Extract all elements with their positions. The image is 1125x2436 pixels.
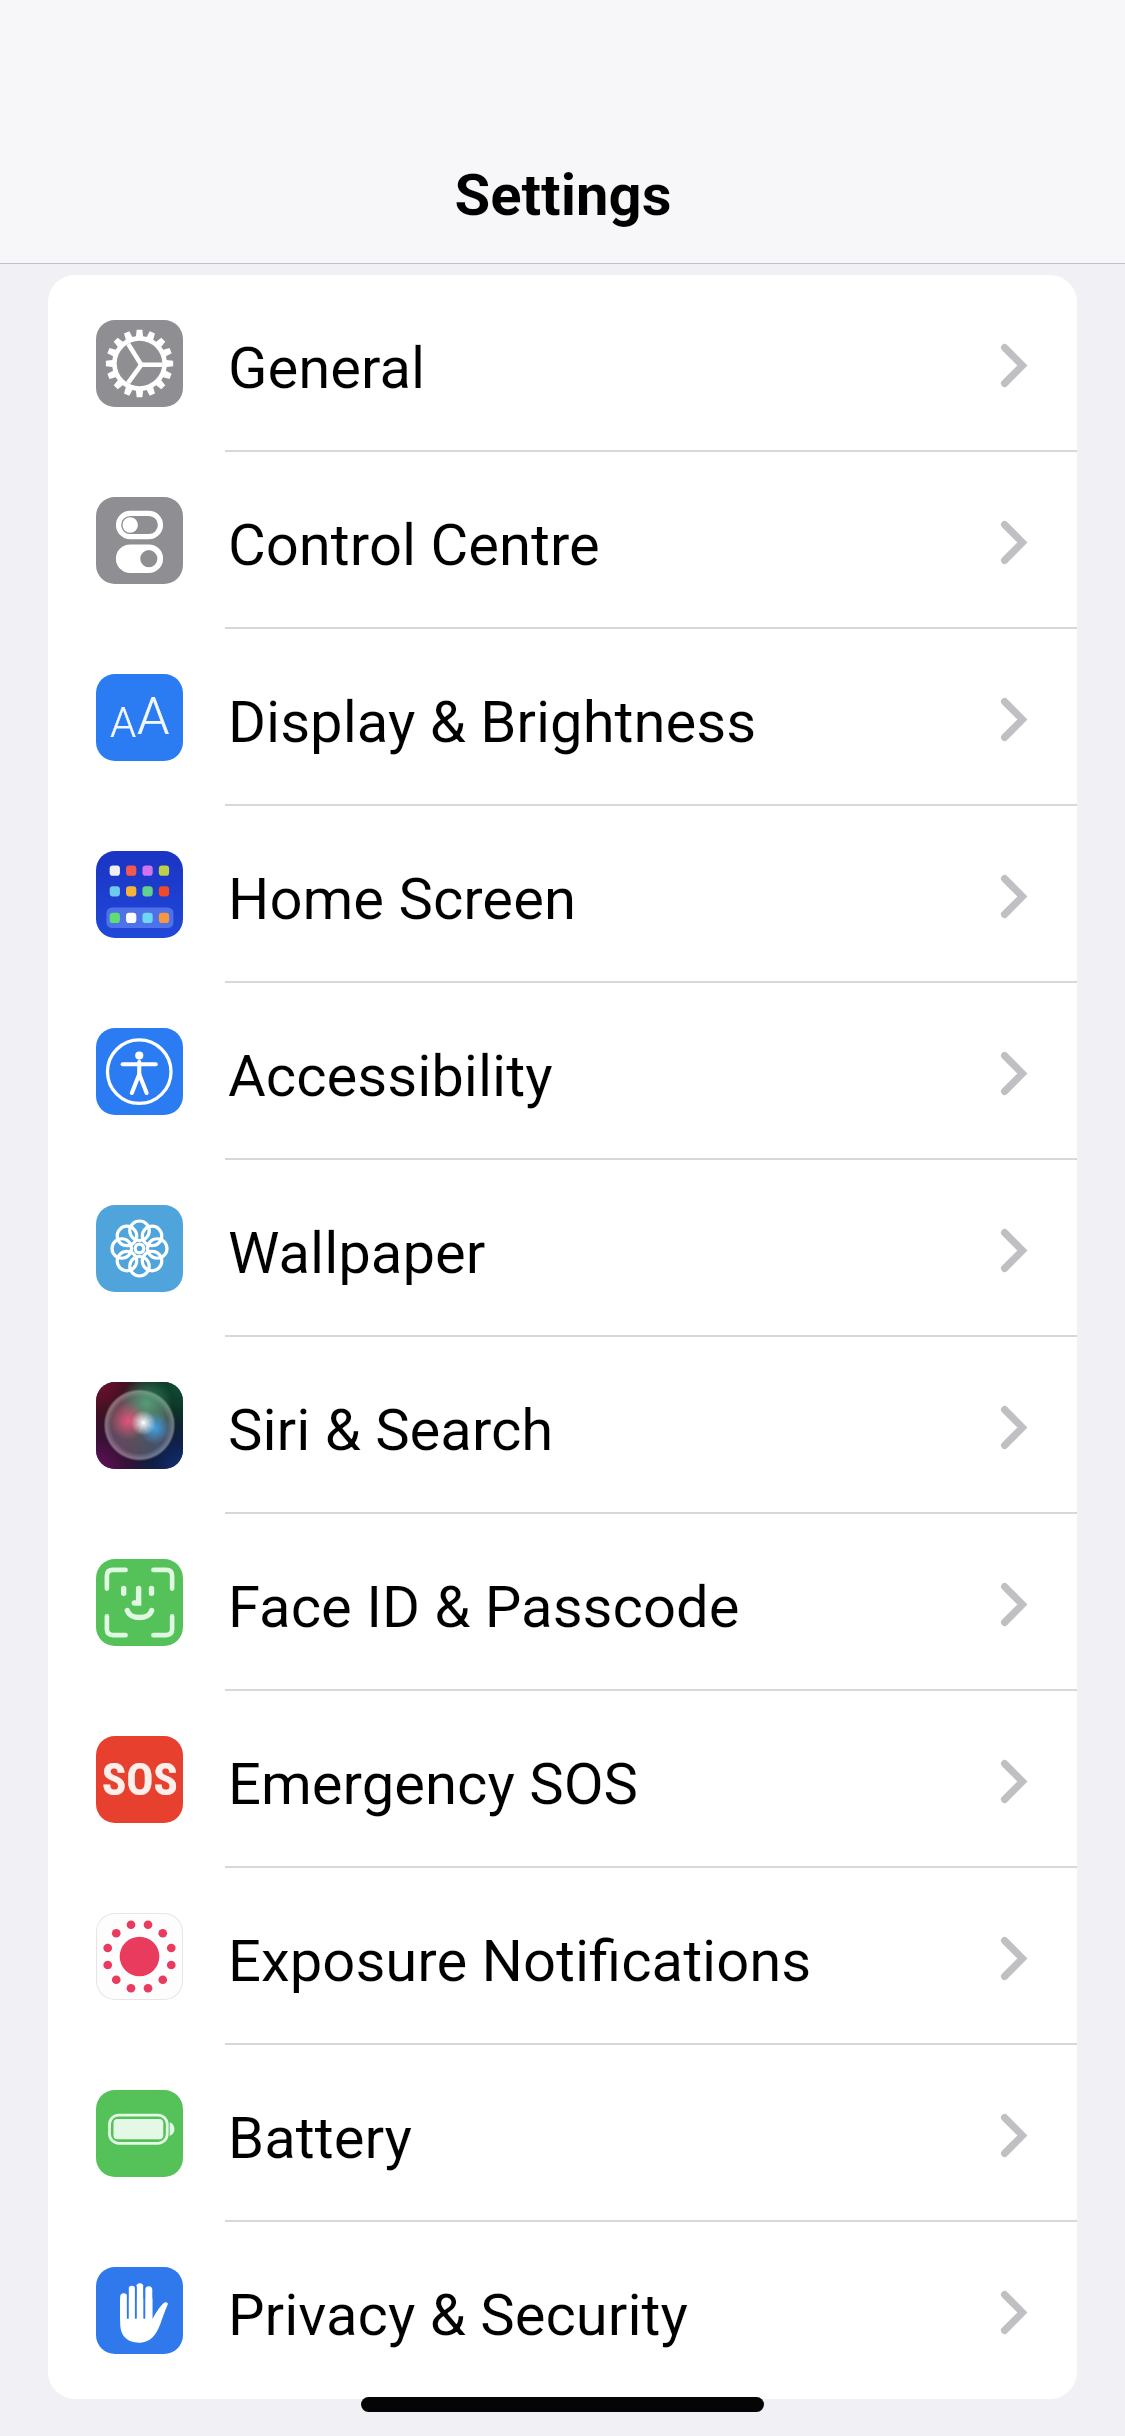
staticText: General [228, 334, 426, 402]
button[interactable]: Siri & Search [48, 1337, 1077, 1514]
staticText: Control Centre [228, 511, 600, 579]
staticText: Home Screen [228, 865, 576, 933]
button[interactable]: General [48, 275, 1077, 452]
button[interactable]: Battery [48, 2045, 1077, 2222]
button[interactable]: Home Screen [48, 806, 1077, 983]
button[interactable]: Control Centre [48, 452, 1077, 629]
staticText: SOS [102, 1753, 178, 1806]
staticText: Accessibility [228, 1042, 553, 1110]
button[interactable]: Privacy & Security [48, 2222, 1077, 2399]
staticText: Settings [454, 161, 672, 229]
button[interactable]: Exposure Notifications [48, 1868, 1077, 2045]
button[interactable]: Accessibility [48, 983, 1077, 1160]
staticText: Emergency SOS [228, 1750, 639, 1818]
staticText: A [137, 686, 170, 747]
button[interactable]: A [48, 629, 1077, 806]
staticText: Siri & Search [228, 1396, 554, 1464]
staticText: A [110, 698, 137, 747]
staticText: Battery [228, 2104, 412, 2172]
button[interactable]: Wallpaper [48, 1160, 1077, 1337]
staticText: Privacy & Security [228, 2281, 688, 2349]
staticText: Exposure Notifications [228, 1927, 812, 1995]
button[interactable]: Face ID & Passcode [48, 1514, 1077, 1691]
staticText: Display & Brightness [228, 688, 757, 756]
button[interactable]: SOS [48, 1691, 1077, 1868]
staticText: Face ID & Passcode [228, 1573, 740, 1641]
staticText: Wallpaper [228, 1219, 486, 1287]
